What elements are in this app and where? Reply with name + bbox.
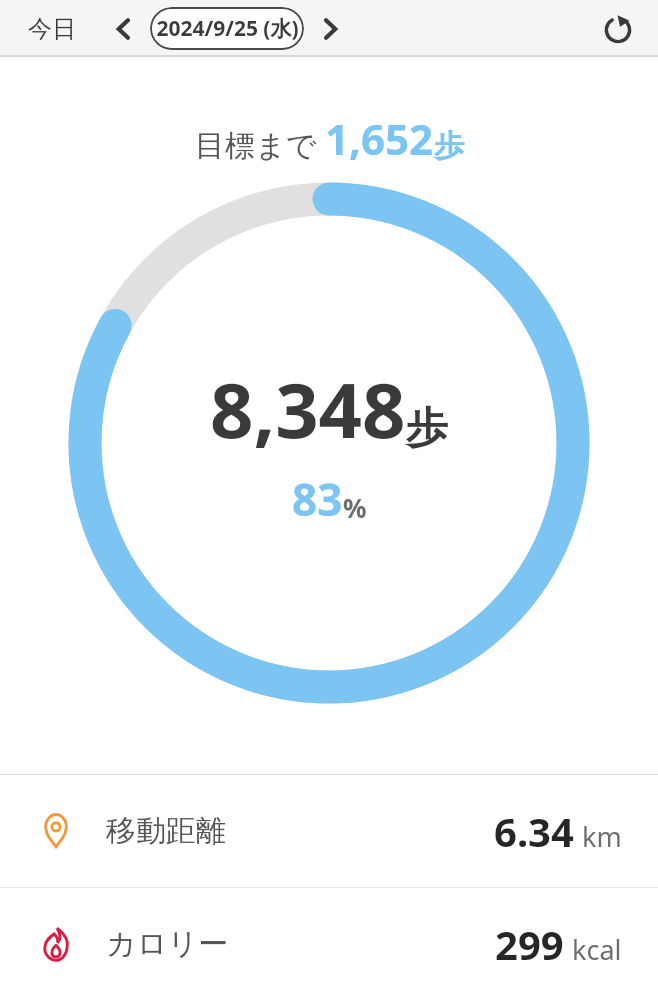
staticText: 2024/9/25 (水) xyxy=(156,14,299,43)
staticText: km xyxy=(582,818,622,855)
staticText: 1,652 xyxy=(325,110,434,167)
staticText: 歩 xyxy=(406,402,448,455)
staticText: 今日 xyxy=(28,14,76,44)
staticText: 目標まで xyxy=(195,127,317,165)
staticText: 8,348 xyxy=(210,357,406,461)
button[interactable]: Previous day xyxy=(102,7,146,51)
button[interactable]: Refresh xyxy=(594,5,642,53)
staticText: 移動距離 xyxy=(106,812,226,850)
staticText: 6.34 xyxy=(494,804,574,858)
button[interactable]: 2024/9/25 (水) xyxy=(150,7,304,50)
staticText: 299 xyxy=(495,917,564,971)
button[interactable]: 今日 xyxy=(22,10,82,48)
staticText: 歩 xyxy=(434,127,464,165)
staticText: 83 xyxy=(292,469,343,529)
button[interactable]: 移動距離 xyxy=(0,775,658,887)
staticText: % xyxy=(343,490,367,525)
button[interactable]: カロリー xyxy=(0,888,658,1000)
staticText: カロリー xyxy=(106,925,229,963)
staticText: kcal xyxy=(572,931,622,968)
button[interactable]: Next day xyxy=(308,7,352,51)
